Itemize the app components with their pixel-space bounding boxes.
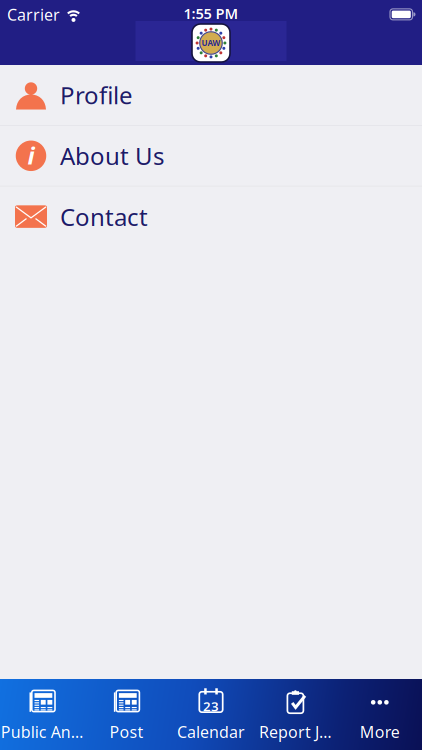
staticText: Contact: [60, 201, 148, 233]
staticText: About Us: [60, 140, 164, 172]
staticText: i: [27, 139, 34, 171]
button[interactable]: Public An…: [0, 679, 84, 750]
button[interactable]: 23: [169, 679, 253, 750]
staticText: 1:55 PM: [183, 3, 238, 23]
staticText: UAW: [201, 38, 220, 48]
button[interactable]: Report J…: [253, 679, 338, 750]
button[interactable]: i: [0, 126, 422, 186]
button[interactable]: More: [338, 679, 422, 750]
staticText: Public An…: [1, 721, 84, 742]
button[interactable]: Contact: [0, 187, 422, 247]
staticText: Post: [110, 721, 144, 742]
staticText: 23: [203, 697, 219, 715]
staticText: Carrier: [7, 4, 60, 25]
staticText: Report J…: [259, 721, 332, 742]
button[interactable]: Post: [84, 679, 169, 750]
staticText: Profile: [60, 79, 133, 111]
button[interactable]: Profile: [0, 65, 422, 125]
staticText: More: [360, 721, 400, 742]
staticText: Calendar: [177, 721, 245, 742]
